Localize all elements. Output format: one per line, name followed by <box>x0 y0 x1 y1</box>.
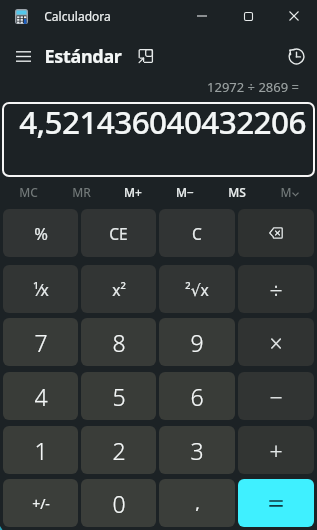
button[interactable]: MR <box>55 177 107 206</box>
button[interactable]: M− <box>159 177 211 206</box>
staticText: M− <box>176 184 194 200</box>
staticText: M+ <box>124 184 142 200</box>
staticText: 2 <box>112 435 126 466</box>
staticText: C <box>192 223 202 244</box>
staticText: 3 <box>190 435 204 466</box>
button[interactable]: , <box>159 479 235 527</box>
button[interactable] <box>6 39 40 73</box>
staticText: M <box>280 184 292 200</box>
button[interactable]: 6 <box>159 372 235 420</box>
button[interactable]: + <box>238 426 314 474</box>
staticText: MC <box>19 184 38 200</box>
staticText: + <box>269 435 283 466</box>
staticText: Calculadora <box>44 8 111 24</box>
staticText: 1 <box>34 435 48 466</box>
button[interactable]: 0 <box>81 479 156 527</box>
button[interactable] <box>238 479 314 527</box>
staticText: − <box>269 381 283 412</box>
staticText: 9 <box>190 327 204 358</box>
staticText: MS <box>228 184 246 200</box>
button[interactable]: 5 <box>81 372 156 420</box>
button[interactable]: − <box>238 372 314 420</box>
staticText: MR <box>72 184 91 200</box>
staticText: Estándar <box>44 44 122 69</box>
button[interactable]: ²√x <box>159 265 235 313</box>
staticText: x² <box>112 279 126 300</box>
staticText: × <box>269 327 283 358</box>
button[interactable]: 2 <box>81 426 156 474</box>
button[interactable]: 9 <box>159 318 235 366</box>
button[interactable]: 1 <box>3 426 78 474</box>
button[interactable]: 7 <box>3 318 78 366</box>
staticText: , <box>195 493 200 513</box>
staticText: ¹⁄x <box>33 279 49 300</box>
staticText: 4 <box>34 381 48 412</box>
staticText: 6 <box>190 381 204 412</box>
staticText: CE <box>109 223 128 244</box>
staticText: % <box>34 222 48 244</box>
button[interactable] <box>238 209 314 257</box>
button[interactable] <box>225 0 271 32</box>
button[interactable]: x² <box>81 265 156 313</box>
staticText: ÷ <box>269 274 283 305</box>
button[interactable]: × <box>238 318 314 366</box>
button[interactable]: MS <box>211 177 263 206</box>
staticText: ²√x <box>185 279 209 300</box>
staticText: 7 <box>34 327 48 358</box>
staticText: 0 <box>112 488 126 519</box>
button[interactable]: 4 <box>3 372 78 420</box>
button[interactable]: +/- <box>3 479 78 527</box>
staticText: 4,521436040432206 <box>19 100 306 143</box>
staticText: 12972 ÷ 2869 = <box>207 78 299 96</box>
button[interactable]: ÷ <box>238 265 314 313</box>
button[interactable]: 3 <box>159 426 235 474</box>
button[interactable]: MC <box>2 177 55 206</box>
staticText: +/- <box>32 494 50 513</box>
button[interactable] <box>271 0 317 32</box>
button[interactable] <box>179 0 225 32</box>
staticText: 8 <box>112 327 126 358</box>
button[interactable]: 8 <box>81 318 156 366</box>
staticText: 5 <box>112 381 126 412</box>
button[interactable]: CE <box>81 209 156 257</box>
button[interactable]: 4,521436040432206 <box>2 102 315 177</box>
button[interactable]: M+ <box>107 177 159 206</box>
button[interactable]: M <box>263 177 315 206</box>
button[interactable]: % <box>3 209 78 257</box>
button[interactable]: C <box>159 209 235 257</box>
button[interactable]: ¹⁄x <box>3 265 78 313</box>
button[interactable] <box>133 43 159 69</box>
button[interactable] <box>279 39 313 73</box>
